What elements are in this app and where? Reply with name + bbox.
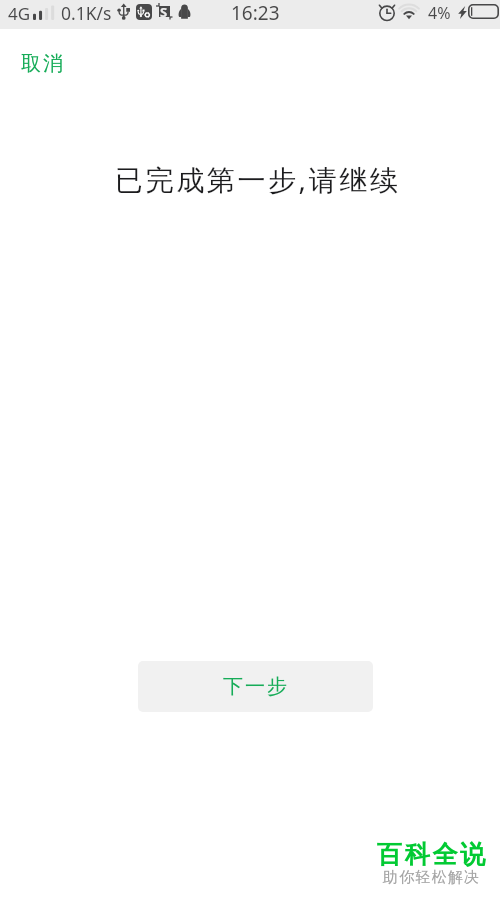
button[interactable]: 取消: [7, 38, 80, 89]
staticText: 16:23: [231, 0, 280, 26]
staticText: 0.1K/s: [61, 1, 112, 25]
staticText: S: [160, 3, 168, 20]
other: Signal strength: [33, 5, 54, 20]
button[interactable]: 下一步: [138, 661, 373, 712]
staticText: 百科全说: [377, 839, 488, 870]
other: Battery 4 percent: [468, 4, 500, 20]
staticText: 4G: [8, 2, 31, 25]
staticText: 4%: [428, 2, 451, 24]
other: Screen recorder: [155, 3, 173, 20]
staticText: 已完成第一步,请继续: [115, 160, 401, 198]
staticText: 下一步: [222, 674, 288, 699]
staticText: 助你轻松解决: [383, 868, 481, 887]
other: Wi-Fi: [397, 2, 421, 22]
other: Charging: [458, 6, 467, 19]
other: USB connected: [117, 3, 130, 20]
other: Alarm: [378, 3, 398, 21]
other: QQ: [178, 3, 191, 19]
staticText: 取消: [21, 51, 66, 76]
other: USB settings: [136, 4, 152, 20]
